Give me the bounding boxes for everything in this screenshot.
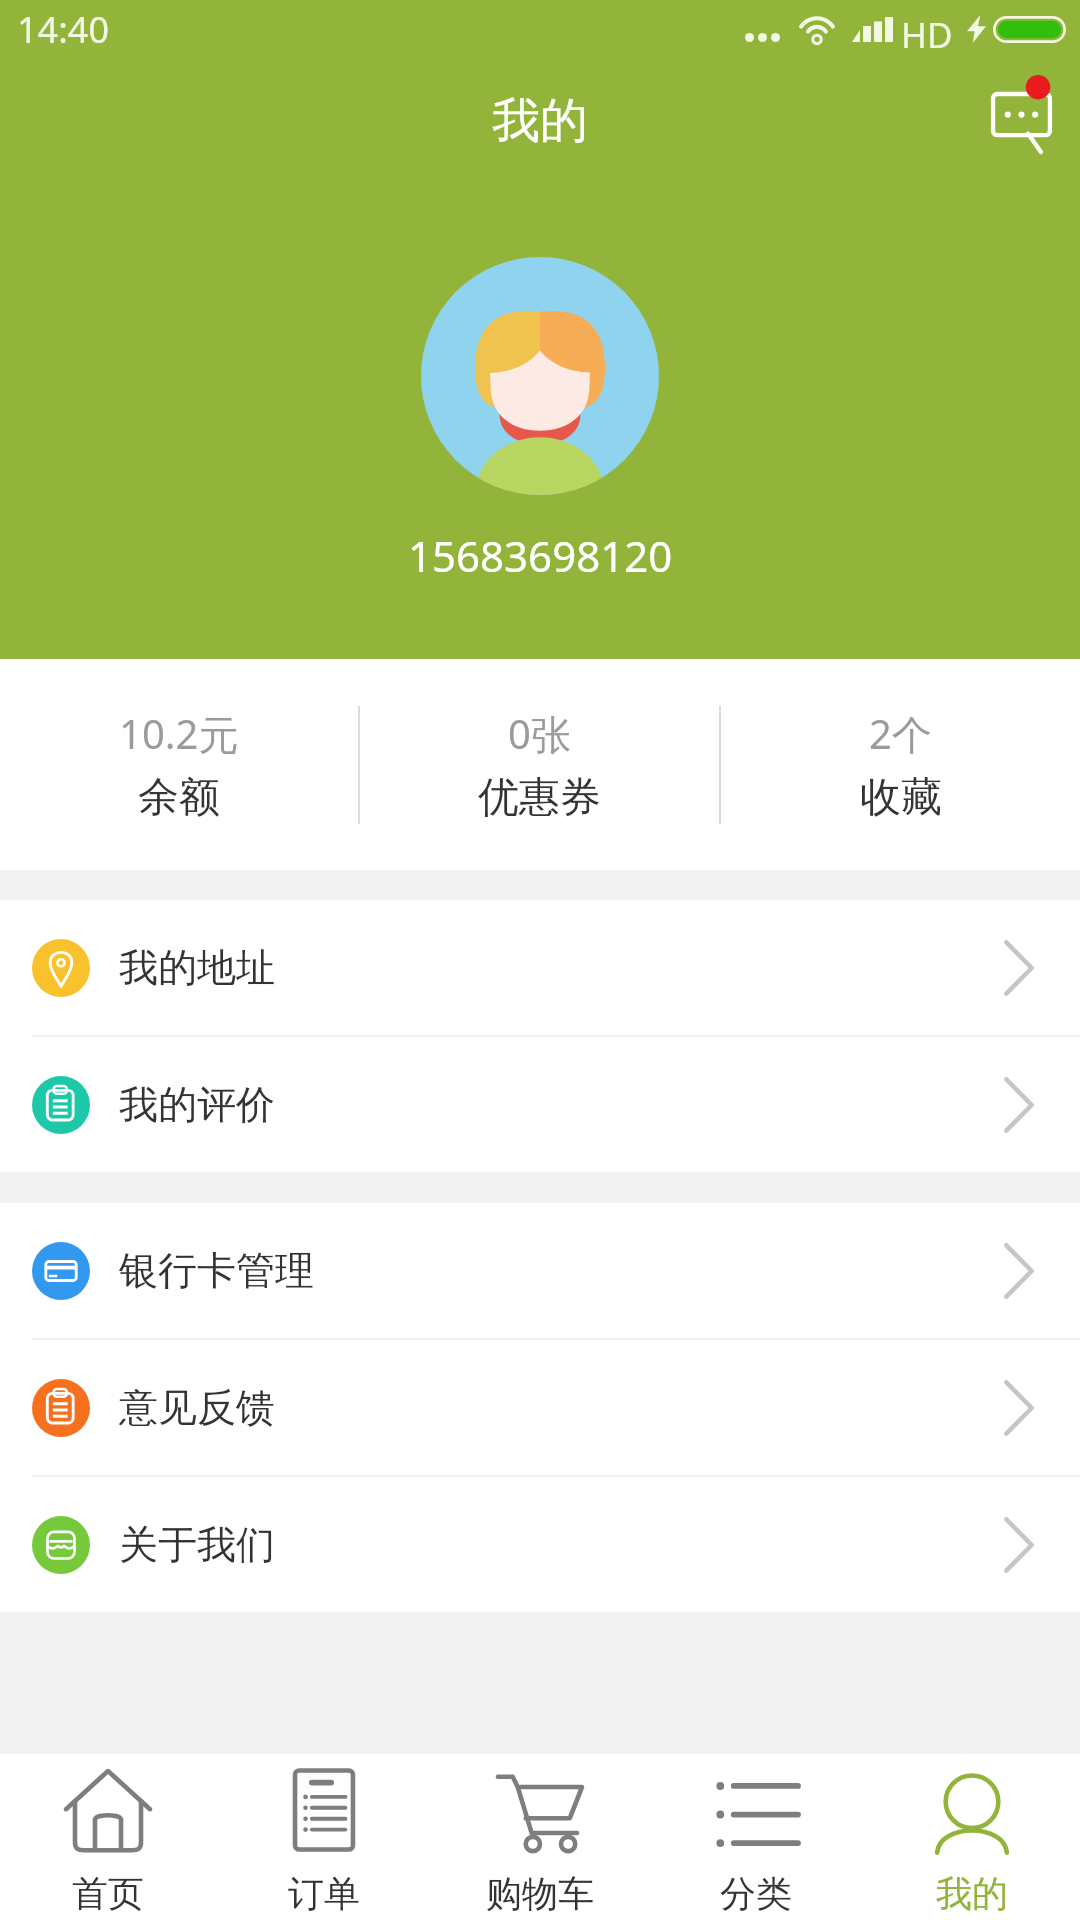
staticText: 10.2元 xyxy=(119,706,239,761)
staticText: 2个 xyxy=(869,706,932,761)
staticText: HD xyxy=(901,11,953,59)
staticText: 银行卡管理 xyxy=(119,1246,314,1295)
button[interactable]: 0张 xyxy=(360,705,719,824)
button[interactable]: 分类 xyxy=(648,1758,864,1916)
staticText: 分类 xyxy=(720,1871,792,1916)
button[interactable]: 我的地址 xyxy=(0,900,1080,1035)
staticText: 首页 xyxy=(72,1871,144,1916)
button[interactable]: 首页 xyxy=(0,1758,216,1916)
staticText: 优惠券 xyxy=(478,772,601,824)
staticText: 我的评价 xyxy=(119,1080,275,1129)
staticText: 0张 xyxy=(508,706,571,761)
button[interactable]: 银行卡管理 xyxy=(0,1203,1080,1338)
staticText: 14:40 xyxy=(17,5,110,54)
button[interactable]: 10.2元 xyxy=(0,705,358,824)
button[interactable]: 订单 xyxy=(216,1758,432,1916)
button[interactable]: Messages xyxy=(988,74,1060,154)
button[interactable]: 我的 xyxy=(864,1758,1080,1916)
staticText: 我的地址 xyxy=(119,943,275,992)
staticText: 余额 xyxy=(138,772,220,824)
button[interactable]: 关于我们 xyxy=(0,1477,1080,1612)
button[interactable]: Profile photo xyxy=(421,257,659,495)
button[interactable]: 2个 xyxy=(721,705,1080,824)
staticText: 15683698120 xyxy=(408,527,673,584)
button[interactable]: 购物车 xyxy=(432,1758,648,1916)
staticText: 收藏 xyxy=(860,772,942,824)
staticText: 购物车 xyxy=(486,1871,594,1916)
staticText: 意见反馈 xyxy=(119,1383,275,1432)
staticText: 我的 xyxy=(936,1871,1008,1916)
button[interactable]: 我的评价 xyxy=(0,1037,1080,1172)
button[interactable]: 意见反馈 xyxy=(0,1340,1080,1475)
staticText: 关于我们 xyxy=(119,1520,275,1569)
staticText: 我的 xyxy=(492,91,588,151)
staticText: 订单 xyxy=(288,1871,360,1916)
